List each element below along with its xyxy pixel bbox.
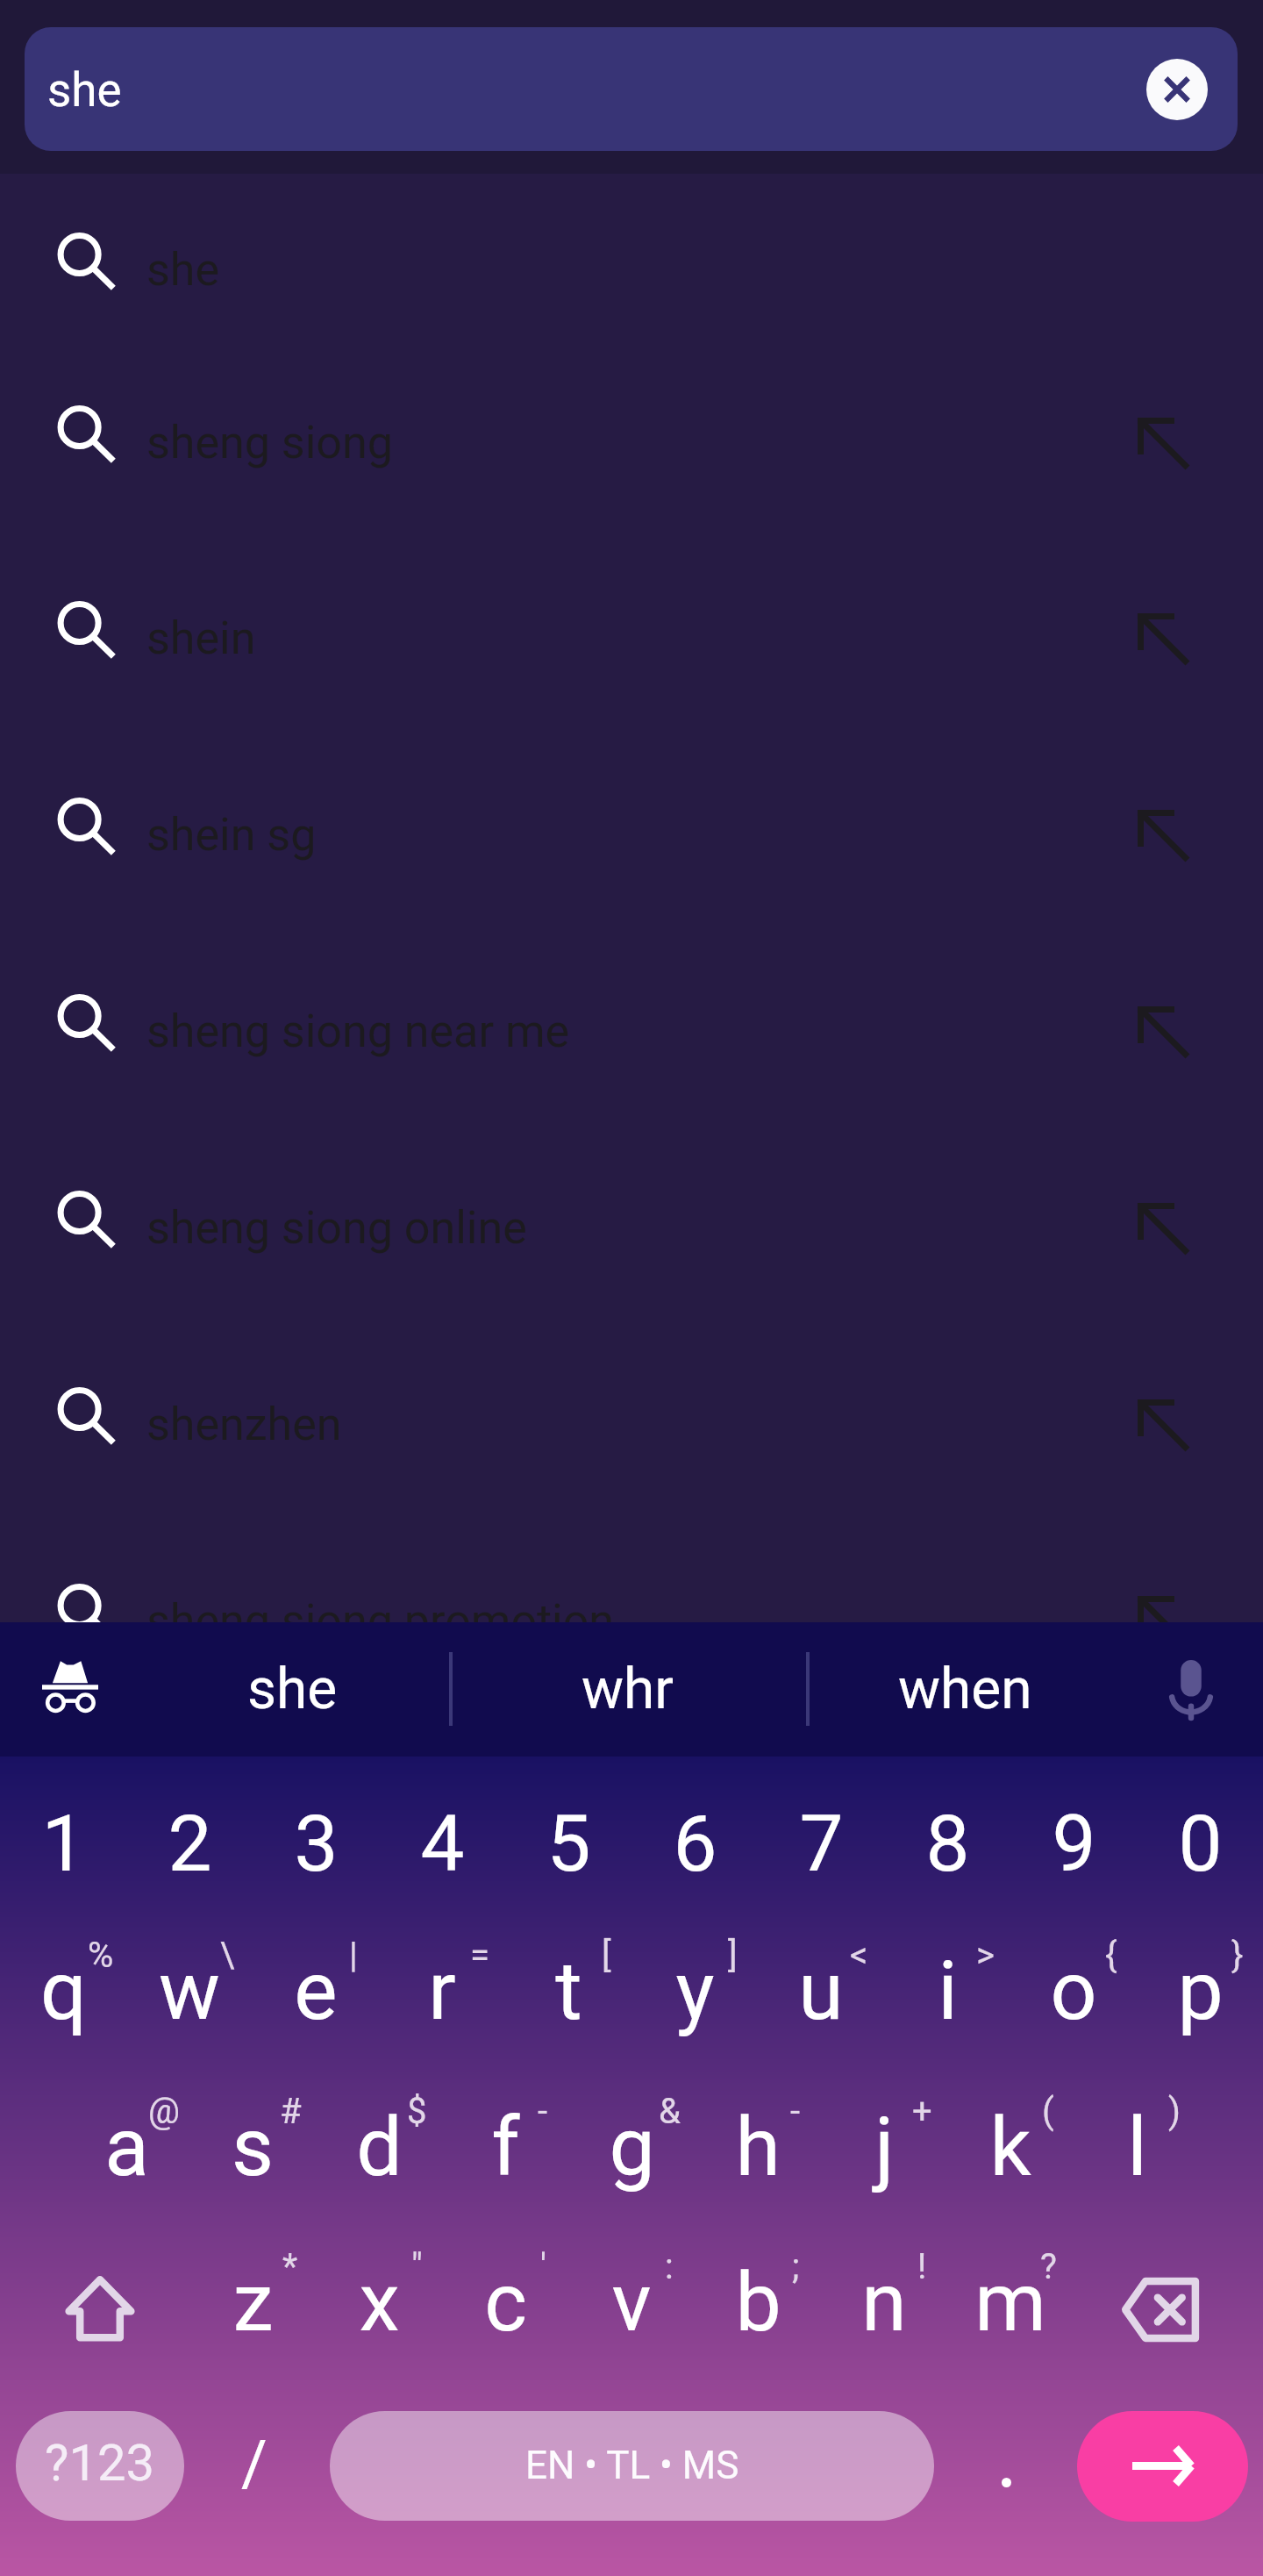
button[interactable]: sheng siong xyxy=(0,334,1263,531)
staticText: EN • TL • MS xyxy=(525,2443,739,2488)
button[interactable]: x xyxy=(316,2219,442,2373)
button[interactable]: EN • TL • MS xyxy=(330,2411,934,2521)
button[interactable]: she xyxy=(0,161,1263,358)
staticText: c xyxy=(484,2255,527,2351)
button[interactable]: she xyxy=(25,27,1238,151)
button[interactable]: / xyxy=(195,2392,314,2541)
button[interactable]: w xyxy=(126,1907,253,2062)
button[interactable]: whr xyxy=(470,1622,786,1757)
staticText: u xyxy=(798,1943,844,2039)
button[interactable]: y xyxy=(631,1907,758,2062)
button[interactable]: Shift xyxy=(0,2216,189,2371)
button[interactable]: 2 xyxy=(126,1760,253,1914)
button[interactable]: 4 xyxy=(379,1760,505,1914)
button[interactable]: Clear search xyxy=(1146,59,1208,120)
button[interactable]: o xyxy=(1010,1907,1137,2062)
staticText: $ xyxy=(407,2091,427,2132)
button[interactable]: r xyxy=(379,1907,505,2062)
button[interactable]: a xyxy=(63,2064,189,2218)
button[interactable]: shenzhen xyxy=(0,1316,1263,1513)
staticText: ; xyxy=(792,2246,800,2287)
button[interactable]: t xyxy=(505,1907,631,2062)
staticText: % xyxy=(88,1935,114,1976)
staticText: 2 xyxy=(168,1798,212,1889)
other: Voice input xyxy=(1170,1660,1212,1718)
staticText: j xyxy=(874,2100,895,2195)
button[interactable]: u xyxy=(758,1907,884,2062)
button[interactable]: shein sg xyxy=(0,726,1263,923)
button[interactable]: 1 xyxy=(0,1760,126,1914)
staticText: x xyxy=(359,2255,400,2351)
staticText: i xyxy=(938,1943,958,2039)
staticText: 8 xyxy=(925,1798,970,1889)
button[interactable]: j xyxy=(821,2064,947,2218)
button[interactable]: sheng siong promotion xyxy=(0,1513,1263,1709)
button[interactable]: z xyxy=(189,2219,316,2373)
button[interactable]: shein xyxy=(0,530,1263,726)
button[interactable]: d xyxy=(316,2064,442,2218)
button[interactable]: m xyxy=(947,2219,1074,2373)
staticText: s xyxy=(232,2100,274,2195)
button[interactable]: q xyxy=(0,1907,126,2062)
staticText: l xyxy=(1127,2100,1147,2195)
staticText: o xyxy=(1050,1943,1097,2039)
button[interactable]: 0 xyxy=(1137,1760,1263,1914)
button[interactable]: 5 xyxy=(505,1760,631,1914)
button[interactable]: k xyxy=(947,2064,1074,2218)
staticText: 9 xyxy=(1052,1798,1096,1889)
button[interactable]: v xyxy=(568,2219,695,2373)
staticText: sheng siong xyxy=(146,416,393,469)
staticText: v xyxy=(611,2255,652,2351)
staticText: * xyxy=(282,2246,298,2287)
staticText: ' xyxy=(540,2246,546,2287)
staticText: y xyxy=(675,1943,715,2039)
staticText: 6 xyxy=(673,1798,717,1889)
button[interactable]: g xyxy=(568,2064,695,2218)
staticText: 3 xyxy=(294,1798,339,1889)
button[interactable]: n xyxy=(821,2219,947,2373)
staticText: e xyxy=(294,1943,338,2039)
staticText: p xyxy=(1177,1943,1224,2039)
button[interactable]: Search xyxy=(1077,2411,1248,2522)
staticText: sheng siong promotion xyxy=(146,1594,615,1648)
staticText: - xyxy=(538,2091,548,2132)
button[interactable]: Backspace xyxy=(1074,2216,1263,2371)
button[interactable]: she xyxy=(134,1622,450,1757)
staticText: f xyxy=(491,2100,520,2195)
staticText: - xyxy=(790,2091,801,2132)
staticText: 7 xyxy=(799,1798,844,1889)
button[interactable]: e xyxy=(253,1907,379,2062)
button[interactable]: f xyxy=(442,2064,568,2218)
staticText: \ xyxy=(220,1935,235,1976)
staticText: { xyxy=(1105,1935,1117,1976)
staticText: she xyxy=(146,243,220,297)
staticText: she xyxy=(47,63,122,118)
button[interactable]: 7 xyxy=(758,1760,884,1914)
button[interactable]: 9 xyxy=(1010,1760,1137,1914)
button[interactable] xyxy=(947,2392,1067,2541)
button[interactable]: l xyxy=(1074,2064,1200,2218)
staticText: q xyxy=(40,1943,87,2039)
button[interactable]: c xyxy=(442,2219,568,2373)
button[interactable]: s xyxy=(189,2064,316,2218)
staticText: t xyxy=(555,1943,582,2039)
button[interactable]: sheng siong near me xyxy=(0,923,1263,1120)
staticText: z xyxy=(232,2255,274,2351)
button[interactable]: p xyxy=(1137,1907,1263,2062)
button[interactable]: ?123 xyxy=(16,2411,184,2521)
button[interactable]: h xyxy=(695,2064,821,2218)
button[interactable]: sheng siong online xyxy=(0,1120,1263,1316)
staticText: < xyxy=(850,1935,868,1976)
button[interactable]: b xyxy=(695,2219,821,2373)
button[interactable]: 3 xyxy=(253,1760,379,1914)
button[interactable]: i xyxy=(884,1907,1010,2062)
staticText: h xyxy=(735,2100,781,2195)
button[interactable]: 6 xyxy=(631,1760,758,1914)
staticText: shenzhen xyxy=(146,1398,342,1451)
staticText: n xyxy=(861,2255,907,2351)
staticText: shein xyxy=(146,612,256,665)
staticText: ] xyxy=(728,1935,738,1976)
button[interactable]: 8 xyxy=(884,1760,1010,1914)
staticText: " xyxy=(411,2246,423,2287)
button[interactable]: when xyxy=(807,1622,1123,1757)
